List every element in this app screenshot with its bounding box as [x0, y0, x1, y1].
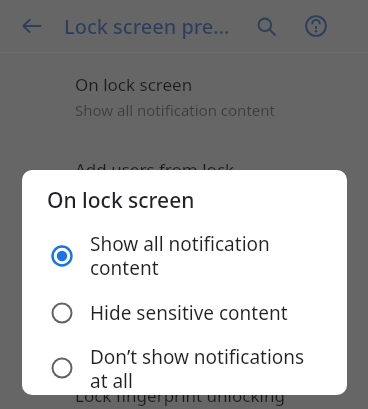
button[interactable]: Hide sensitive content — [22, 284, 347, 341]
button[interactable]: Back — [12, 6, 52, 46]
staticText: Lock screen pre… — [64, 13, 230, 40]
button[interactable]: Lock fingerprint unlocking — [0, 384, 368, 409]
staticText: On lock screen — [47, 186, 195, 215]
staticText: Add users from lock — [75, 158, 235, 181]
staticText: Show all notification content — [75, 100, 275, 120]
button[interactable]: Help — [296, 6, 336, 46]
staticText: Don’t show notifications at all — [90, 344, 305, 393]
staticText: On lock screen — [75, 73, 193, 96]
button[interactable]: On lock screen — [0, 73, 368, 120]
staticText: Hide sensitive content — [90, 300, 288, 326]
staticText: screen — [75, 185, 122, 205]
button[interactable]: Show all notification content — [22, 227, 347, 284]
staticText: Show all notification content — [90, 231, 305, 280]
button[interactable]: Add users from lock — [0, 158, 368, 205]
staticText: Lock fingerprint unlocking — [75, 384, 285, 407]
button[interactable]: Search — [246, 6, 286, 46]
button[interactable]: Don’t show notifications at all — [22, 341, 347, 395]
